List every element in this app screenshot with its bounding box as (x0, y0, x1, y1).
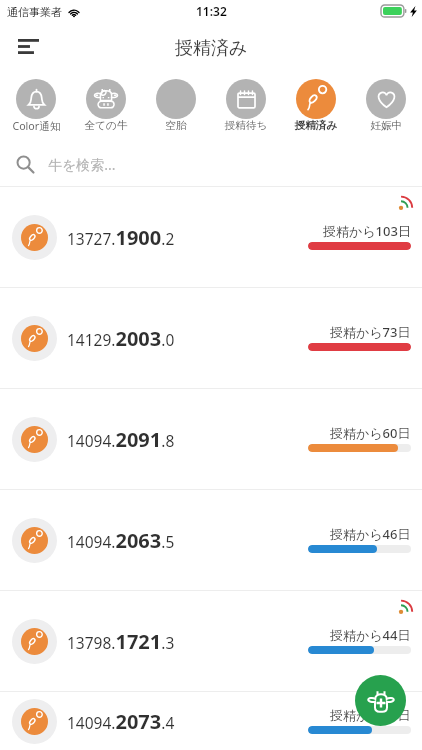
staticText: 通信事業者 (7, 5, 62, 19)
button[interactable]: Add cow (355, 675, 406, 726)
button[interactable]: 妊娠中 (352, 70, 420, 132)
staticText: 14094.2073.4 (67, 708, 175, 735)
button[interactable]: 13798.1721.3 (0, 591, 422, 692)
button[interactable]: 14094.2091.8 (0, 389, 422, 490)
staticText: Color通知 (12, 119, 61, 134)
staticText: 空胎 (165, 119, 187, 132)
button[interactable]: 授精待ち (212, 70, 280, 132)
button[interactable]: 13727.1900.2 (0, 187, 422, 288)
staticText: 牛を検索... (48, 155, 116, 174)
button[interactable]: 14094.2063.5 (0, 490, 422, 591)
staticText: 授精済み (175, 37, 248, 60)
staticText: 13798.1721.3 (67, 628, 175, 655)
staticText: 授精済み (294, 119, 338, 132)
staticText: 授精待ち (224, 119, 268, 132)
button[interactable]: Menu (10, 28, 46, 64)
staticText: 授精から43日 (330, 706, 411, 724)
staticText: 授精から103日 (323, 222, 411, 240)
button[interactable]: 空胎 (142, 70, 210, 132)
staticText: 授精から73日 (330, 323, 411, 341)
staticText: 授精から44日 (330, 626, 411, 644)
staticText: 11:32 (196, 3, 227, 19)
staticText: 14129.2003.0 (67, 325, 175, 352)
staticText: 14094.2063.5 (67, 527, 175, 554)
staticText: 授精から60日 (330, 424, 411, 442)
button[interactable]: 14129.2003.0 (0, 288, 422, 389)
staticText: 授精から46日 (330, 525, 411, 543)
button[interactable]: Color通知 (2, 70, 70, 134)
button[interactable]: 授精済み (282, 70, 350, 132)
button[interactable]: 全ての牛 (72, 70, 140, 132)
staticText: 妊娠中 (370, 119, 403, 132)
staticText: 14094.2091.8 (67, 426, 175, 453)
staticText: 全ての牛 (84, 119, 128, 132)
button[interactable]: 14094.2073.4 (0, 692, 422, 750)
staticText: 13727.1900.2 (67, 224, 175, 251)
